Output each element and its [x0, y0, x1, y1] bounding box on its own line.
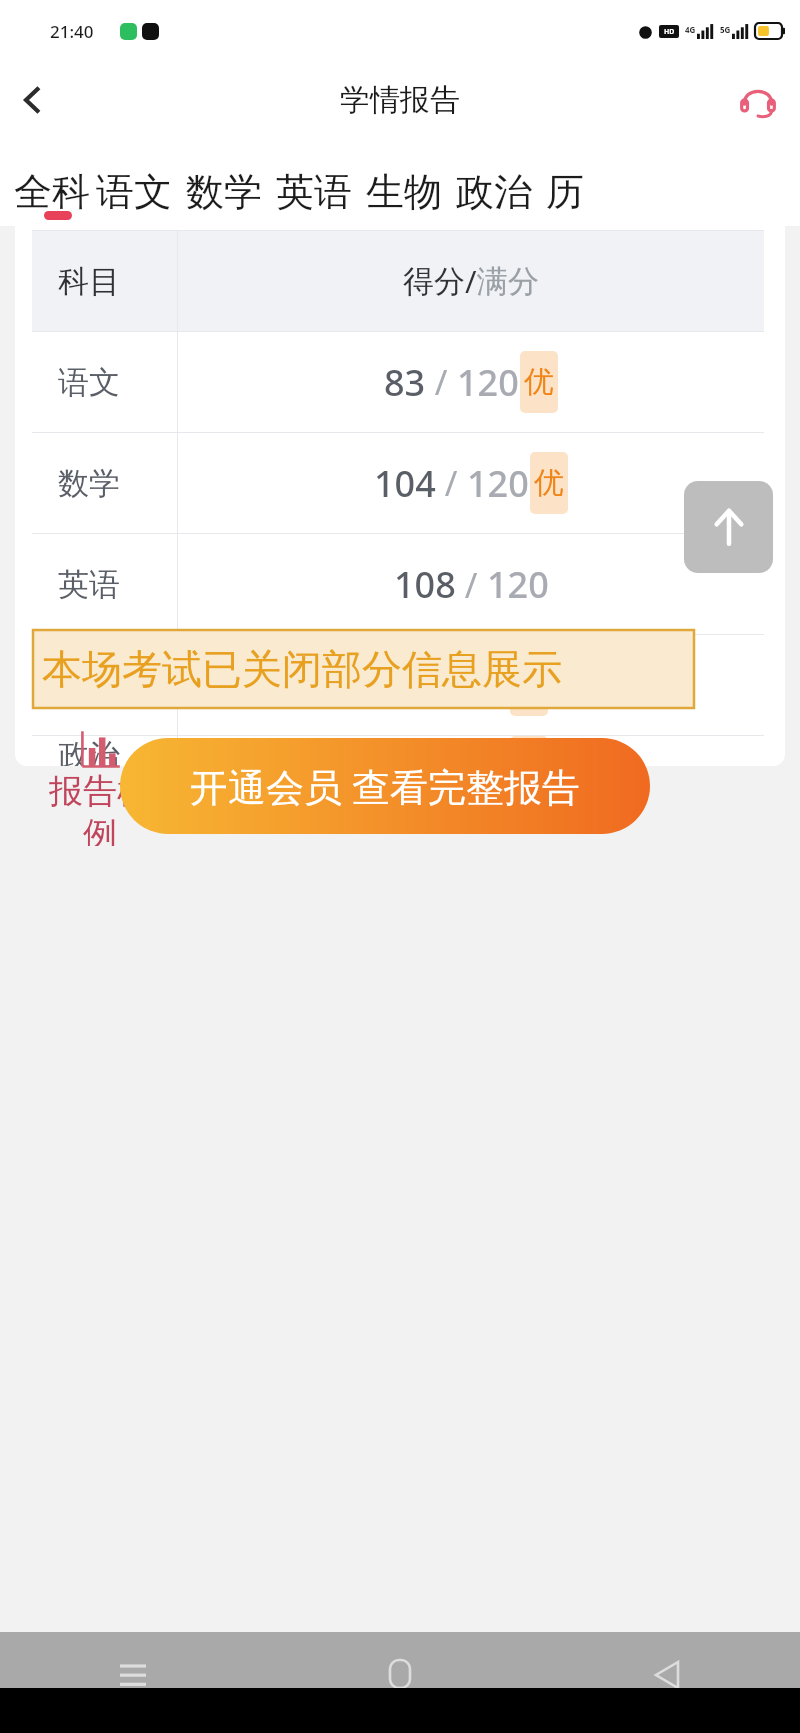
staticText: 4G: [685, 24, 696, 35]
staticText: 21:40: [50, 20, 94, 43]
staticText: 满分: [477, 262, 539, 301]
staticText: 例: [83, 813, 117, 846]
staticText: /: [456, 562, 487, 608]
staticText: 44: [394, 661, 436, 710]
button[interactable]: Back: [533, 1648, 800, 1688]
staticText: 优: [514, 736, 544, 766]
staticText: 优: [534, 464, 564, 502]
button[interactable]: 生物: [366, 168, 442, 222]
staticText: 80: [467, 736, 509, 766]
button[interactable]: 政治: [456, 168, 532, 222]
staticText: 104: [374, 459, 436, 508]
button[interactable]: 报告样: [0, 726, 200, 846]
staticText: /: [436, 736, 467, 766]
staticText: 英语: [276, 168, 352, 216]
staticText: 120: [467, 459, 529, 508]
staticText: 全科: [14, 168, 90, 216]
staticText: 历: [546, 168, 584, 216]
button[interactable]: 本场考试已关闭部分信息展示: [33, 630, 694, 708]
staticText: 数学: [58, 464, 120, 503]
button[interactable]: 英语: [276, 168, 352, 222]
staticText: 报告样: [49, 770, 151, 813]
staticText: 数学: [186, 168, 262, 216]
button[interactable]: 全科: [14, 168, 90, 222]
staticText: 语文: [96, 168, 172, 216]
button[interactable]: 历: [546, 168, 584, 222]
staticText: 生物: [58, 666, 120, 705]
staticText: 语文: [58, 363, 120, 402]
button[interactable]: 开通会员 查看完整报告: [120, 738, 650, 834]
staticText: 英语: [58, 565, 120, 604]
staticText: 74: [394, 736, 436, 766]
staticText: 120: [457, 358, 519, 407]
button[interactable]: Customer service: [730, 72, 786, 128]
staticText: 5G: [720, 24, 731, 35]
button[interactable]: Scroll to top: [684, 481, 773, 573]
staticText: 本场考试已关闭部分信息展示: [42, 644, 562, 694]
staticText: /: [436, 662, 467, 708]
staticText: /: [436, 460, 467, 506]
staticText: HD: [664, 27, 675, 37]
staticText: 优: [514, 666, 544, 704]
staticText: 开通会员 查看完整报告: [190, 760, 580, 812]
button[interactable]: 语文: [96, 168, 172, 222]
staticText: 政治: [456, 168, 532, 216]
staticText: 得分: [403, 262, 465, 301]
button[interactable]: Back: [0, 68, 64, 132]
staticText: /: [426, 359, 457, 405]
button[interactable]: 数学: [186, 168, 262, 222]
staticText: /: [465, 260, 477, 302]
staticText: 科目: [58, 262, 120, 301]
staticText: 120: [487, 560, 549, 609]
staticText: 学情报告: [340, 81, 460, 119]
button[interactable]: Home: [266, 1648, 533, 1688]
staticText: 优: [524, 363, 554, 401]
staticText: 83: [384, 358, 426, 407]
staticText: 生物: [366, 168, 442, 216]
staticText: 50: [467, 661, 509, 710]
staticText: 108: [394, 560, 456, 609]
staticText: 政治: [58, 736, 120, 766]
button[interactable]: Recents: [0, 1648, 266, 1688]
